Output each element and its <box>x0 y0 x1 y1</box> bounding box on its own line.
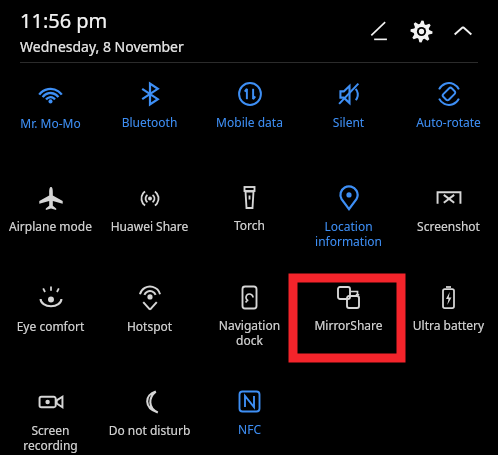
staticText: Location information <box>299 218 398 249</box>
button[interactable]: Do not disturb <box>100 381 199 438</box>
staticText: Hotspot <box>100 318 199 334</box>
button[interactable]: Eye comfort <box>1 277 100 334</box>
button[interactable]: Screen recording <box>1 381 100 453</box>
staticText: Eye comfort <box>1 318 100 334</box>
staticText: Silent <box>299 114 398 130</box>
button[interactable]: Silent <box>299 73 398 130</box>
button[interactable]: Huawei Share <box>100 177 199 234</box>
staticText: Ultra battery <box>399 317 498 333</box>
staticText: Airplane mode <box>1 218 100 234</box>
staticText: Do not disturb <box>100 422 199 438</box>
button[interactable]: MirrorShare <box>299 277 398 333</box>
staticText: Mobile data <box>200 114 299 130</box>
staticText: Screenshot <box>399 218 498 234</box>
button[interactable]: Mobile data <box>200 73 299 130</box>
button[interactable]: Airplane mode <box>1 177 100 234</box>
button[interactable]: Location information <box>299 177 398 249</box>
staticText: Bluetooth <box>100 114 199 130</box>
staticText: Auto-rotate <box>399 114 498 130</box>
button[interactable]: NFC <box>200 381 299 437</box>
button[interactable]: Hotspot <box>100 277 199 334</box>
staticText: 11:56 pm <box>20 7 108 34</box>
staticText: Screen recording <box>1 422 100 453</box>
button[interactable]: Torch <box>200 177 299 233</box>
button[interactable]: Screenshot <box>399 177 498 234</box>
staticText: Navigation dock <box>200 317 299 348</box>
button[interactable]: Ultra battery <box>399 277 498 333</box>
staticText: Huawei Share <box>100 218 199 234</box>
staticText: Mr. Mo-Mo <box>1 115 100 131</box>
staticText: NFC <box>200 421 299 437</box>
button[interactable]: Auto-rotate <box>399 73 498 130</box>
staticText: Torch <box>200 217 299 233</box>
button[interactable]: Collapse <box>442 10 484 52</box>
button[interactable]: Edit <box>358 10 400 52</box>
staticText: Wednesday, 8 November <box>20 37 184 56</box>
button[interactable]: Bluetooth <box>100 73 199 130</box>
button[interactable]: Settings <box>400 10 442 52</box>
staticText: MirrorShare <box>299 317 398 333</box>
button[interactable]: Mr. Mo-Mo <box>1 73 100 131</box>
button[interactable]: Navigation dock <box>200 277 299 348</box>
